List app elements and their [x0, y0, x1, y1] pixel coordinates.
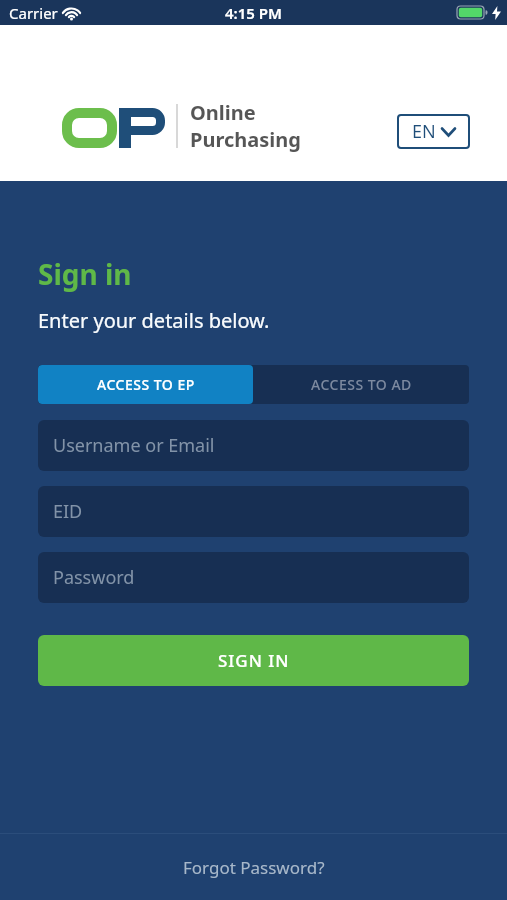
staticText: ACCESS TO AD — [311, 375, 412, 394]
staticText: Sign in — [38, 255, 132, 293]
staticText: Password — [53, 565, 135, 590]
staticText: ACCESS TO EP — [97, 375, 195, 394]
staticText: Purchasing — [190, 126, 301, 153]
button[interactable]: EID — [38, 486, 469, 537]
button[interactable]: ACCESS TO AD — [253, 365, 469, 404]
staticText: Username or Email — [53, 433, 215, 458]
staticText: Carrier — [9, 3, 58, 23]
button[interactable]: Forgot Password? — [0, 834, 507, 900]
button[interactable]: EN — [397, 114, 470, 149]
staticText: Forgot Password? — [183, 856, 325, 879]
staticText: 4:15 PM — [225, 3, 282, 23]
staticText: EN — [412, 119, 436, 144]
staticText: Online — [190, 99, 256, 126]
staticText: Enter your details below. — [38, 307, 270, 334]
staticText: EID — [53, 499, 83, 524]
button[interactable]: ACCESS TO EP — [38, 365, 253, 404]
button[interactable]: Password — [38, 552, 469, 603]
button[interactable]: SIGN IN — [38, 635, 469, 686]
button[interactable]: Username or Email — [38, 420, 469, 471]
staticText: SIGN IN — [218, 649, 290, 672]
